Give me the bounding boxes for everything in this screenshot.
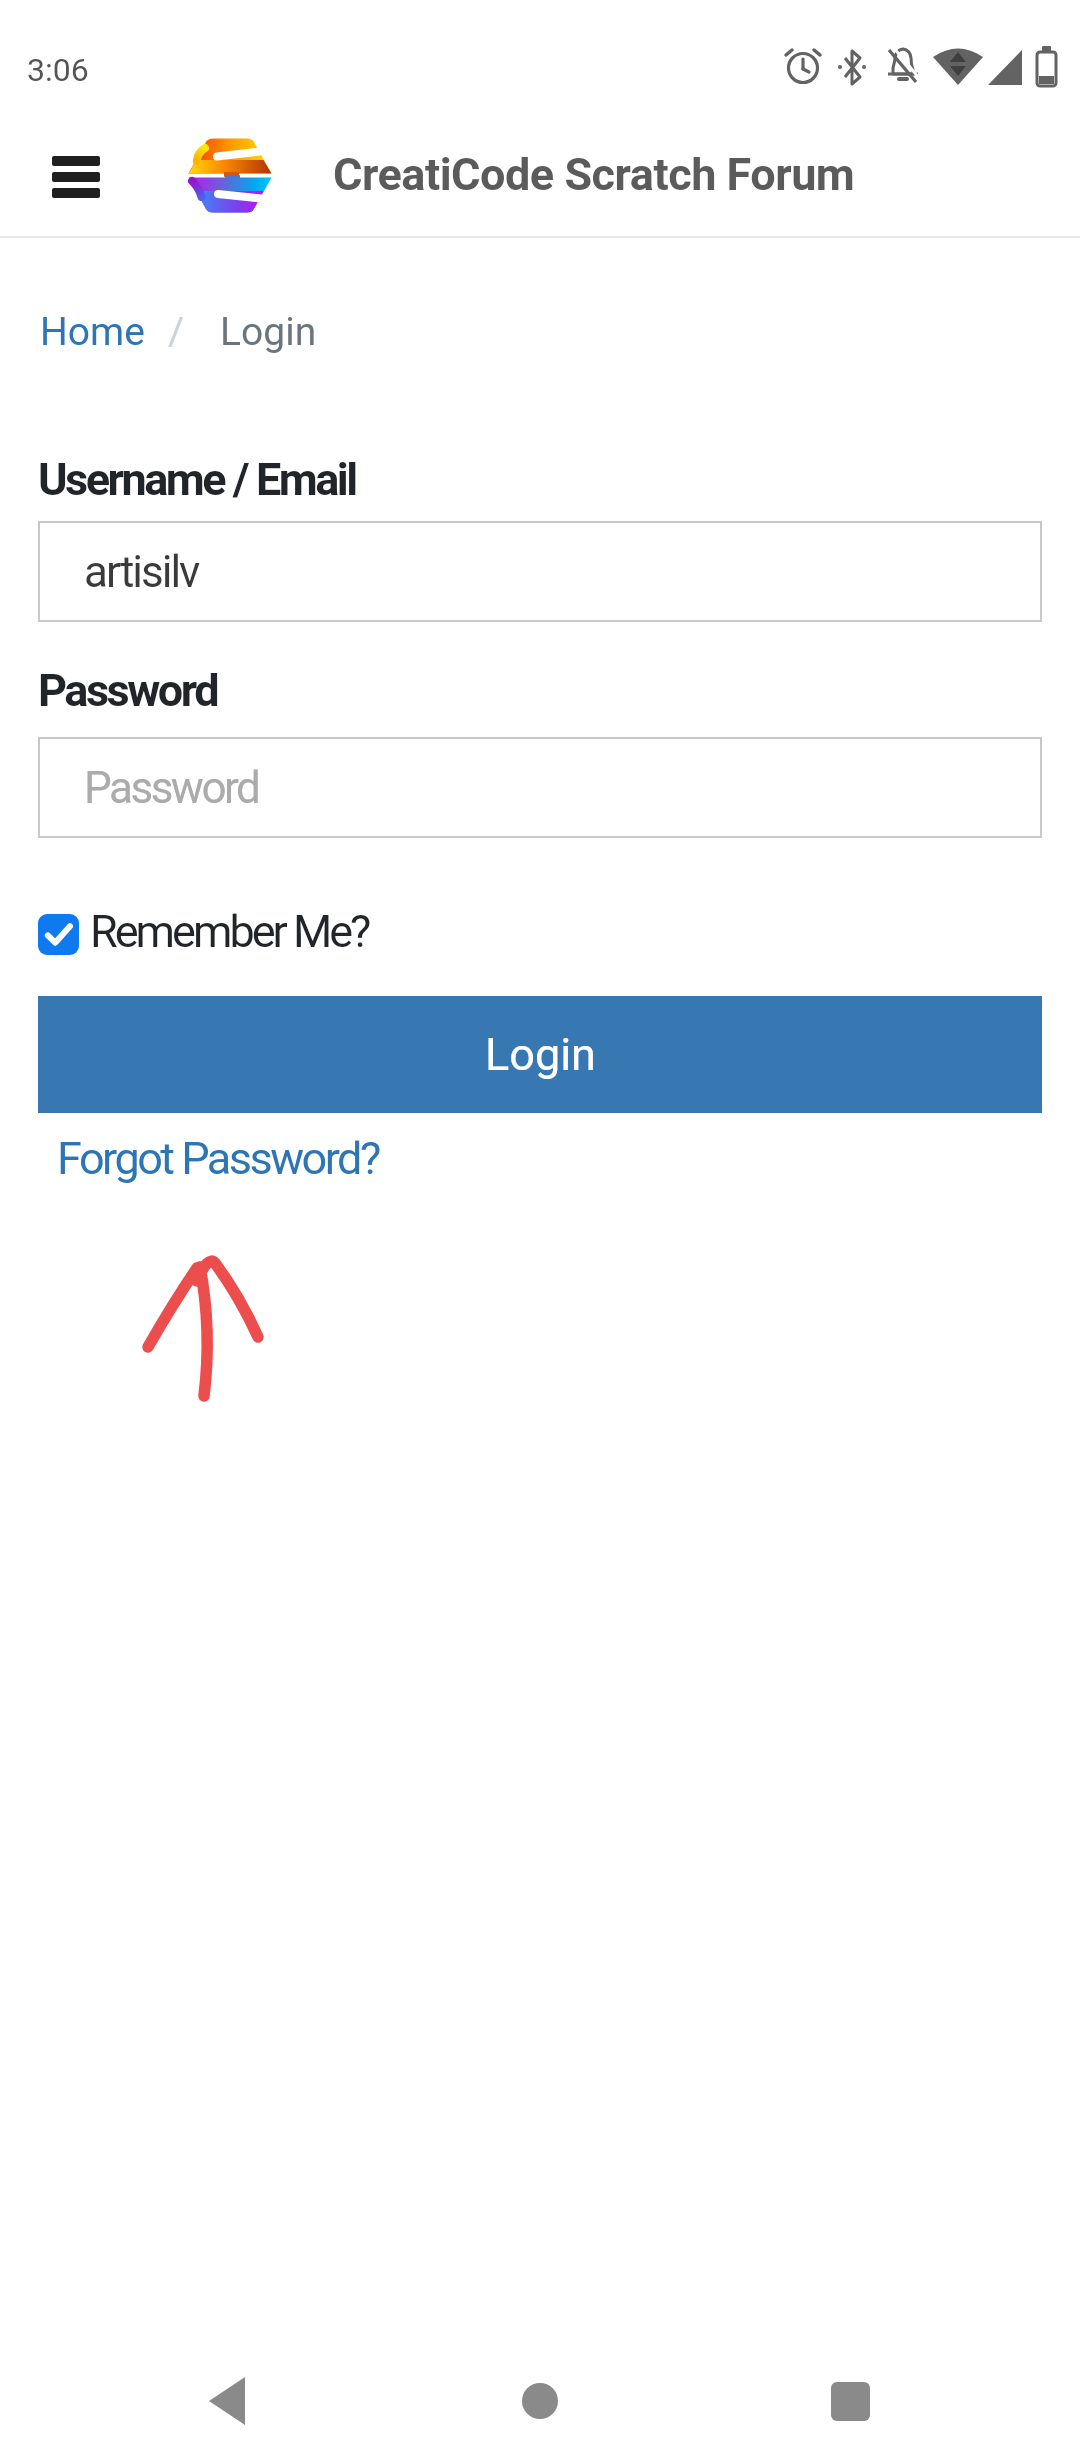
staticText: Password [38,664,218,717]
button[interactable] [40,140,112,212]
button[interactable]: Login [38,996,1042,1113]
staticText: Remember Me? [90,905,369,958]
button[interactable]: artisilv [40,523,1040,620]
staticText: / [168,309,185,355]
button[interactable]: Password [40,739,1040,836]
button[interactable] [810,2370,890,2450]
staticText: Login [485,1028,596,1081]
button[interactable]: Remember Me? [38,905,369,958]
button[interactable]: Forgot Password? [57,1132,379,1185]
staticText: Password [84,762,259,814]
staticText: 3:06 [27,51,89,89]
staticText: artisilv [84,546,199,598]
staticText: CreatiCode Scratch Forum [333,148,855,201]
staticText: Login [220,309,317,355]
button[interactable]: Home [40,309,145,355]
staticText: Username / Email [38,453,356,506]
button[interactable] [500,2370,580,2450]
button[interactable] [190,2370,270,2450]
